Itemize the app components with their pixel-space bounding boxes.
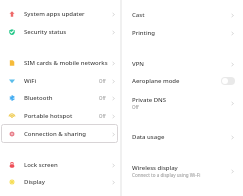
staticText: Data usage <box>132 133 165 141</box>
button[interactable]: Display <box>0 173 119 191</box>
staticText: Private DNS <box>132 96 167 104</box>
button[interactable]: Connection & sharing <box>0 125 119 143</box>
button[interactable]: Bluetooth <box>0 89 119 107</box>
button[interactable]: Wireless display <box>122 160 243 182</box>
staticText: Printing <box>132 29 155 37</box>
button[interactable]: SIM cards & mobile networks <box>0 54 119 72</box>
button[interactable]: Private DNS <box>122 92 243 114</box>
staticText: SIM cards & mobile networks <box>24 59 108 67</box>
staticText: Connection & sharing <box>24 130 87 138</box>
button[interactable]: Portable hotspot <box>0 107 119 125</box>
button[interactable]: VPN <box>122 55 243 73</box>
button[interactable]: WiFi <box>0 72 119 90</box>
staticText: Wireless display <box>132 164 178 172</box>
button[interactable]: Security status <box>0 23 119 41</box>
staticText: Off <box>99 78 106 84</box>
staticText: Off <box>132 104 139 110</box>
button[interactable]: Aeroplane mode toggle <box>221 77 235 85</box>
staticText: Cast <box>132 11 145 19</box>
staticText: Off <box>99 95 106 101</box>
button[interactable]: Printing <box>122 24 243 42</box>
staticText: Off <box>99 113 106 119</box>
staticText: Security status <box>24 28 67 36</box>
staticText: Aeroplane mode <box>132 77 180 85</box>
staticText: Portable hotspot <box>24 112 73 120</box>
button[interactable]: Aeroplane mode <box>122 72 243 90</box>
staticText: Display <box>24 178 45 186</box>
button[interactable]: System apps updater <box>0 5 119 23</box>
staticText: System apps updater <box>24 10 85 18</box>
staticText: VPN <box>132 60 145 68</box>
button[interactable]: Lock screen <box>0 156 119 174</box>
button[interactable]: Data usage <box>122 128 243 146</box>
button[interactable]: Cast <box>122 6 243 24</box>
staticText: Connect to a display using Wi-Fi <box>132 172 201 178</box>
staticText: Lock screen <box>24 161 58 169</box>
staticText: WiFi <box>24 77 37 85</box>
staticText: Bluetooth <box>24 94 53 102</box>
